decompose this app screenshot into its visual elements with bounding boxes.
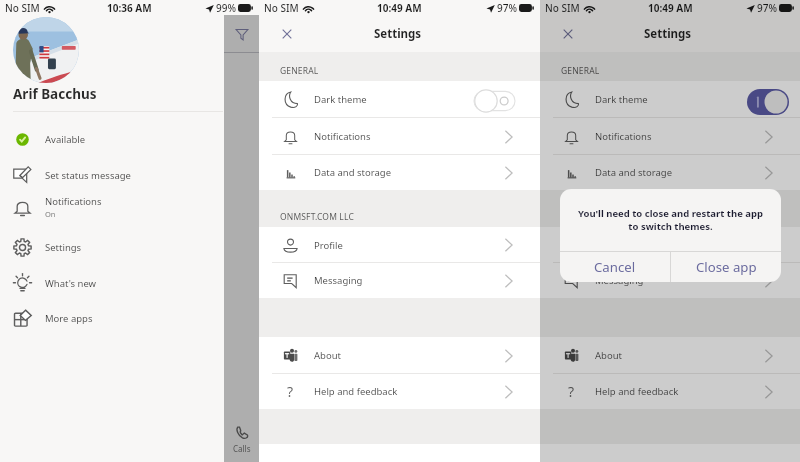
- staticText: No SIM: [264, 1, 299, 15]
- staticText: No SIM: [5, 1, 40, 15]
- button[interactable]: Messaging: [259, 263, 540, 298]
- staticText: Profile: [595, 239, 624, 252]
- button[interactable]: Dark theme: [540, 81, 800, 118]
- staticText: Help and feedback: [595, 385, 679, 398]
- staticText: About: [595, 349, 622, 362]
- button[interactable]: ?: [540, 374, 800, 409]
- staticText: On: [45, 209, 56, 219]
- staticText: Available: [45, 133, 86, 146]
- button[interactable]: Available: [0, 123, 219, 155]
- staticText: ?: [568, 382, 575, 401]
- button[interactable]: Close: [557, 23, 579, 45]
- button[interactable]: Dark theme toggle: [747, 89, 789, 115]
- staticText: You'll need to close and restart the app…: [572, 207, 769, 233]
- button[interactable]: Dark theme toggle: [474, 89, 515, 113]
- button[interactable]: Filter: [224, 15, 259, 52]
- staticText: 99%: [216, 1, 236, 15]
- staticText: Messaging: [595, 274, 644, 287]
- staticText: Arif Bacchus: [13, 85, 97, 103]
- staticText: ?: [287, 382, 294, 401]
- staticText: About: [314, 349, 341, 362]
- staticText: 10:36 AM: [107, 1, 152, 15]
- button[interactable]: Data and storage: [540, 155, 800, 190]
- button[interactable]: Data and storage: [259, 155, 540, 190]
- staticText: ONMSFT.COM LLC: [561, 211, 635, 223]
- staticText: No SIM: [545, 1, 580, 15]
- staticText: Dark theme: [595, 93, 648, 106]
- button[interactable]: Profile photo: [13, 17, 79, 83]
- staticText: Notifications: [595, 130, 652, 143]
- button[interactable]: What's new: [0, 267, 219, 299]
- staticText: Help and feedback: [314, 385, 398, 398]
- button[interactable]: Notifications: [259, 118, 540, 155]
- staticText: Dark theme: [314, 93, 367, 106]
- button[interactable]: About: [540, 337, 800, 374]
- staticText: 10:49 AM: [648, 1, 693, 15]
- button[interactable]: Notifications: [540, 118, 800, 155]
- button[interactable]: About: [259, 337, 540, 374]
- staticText: Cancel: [594, 258, 636, 276]
- button[interactable]: Cancel: [560, 252, 670, 282]
- staticText: 97%: [757, 1, 777, 15]
- button[interactable]: Set status message: [0, 159, 219, 191]
- staticText: Settings: [644, 26, 692, 42]
- staticText: GENERAL: [280, 65, 319, 77]
- button[interactable]: Settings: [0, 231, 219, 263]
- button[interactable]: Profile: [540, 227, 800, 263]
- staticText: Profile: [314, 239, 343, 252]
- button[interactable]: Close app: [671, 252, 781, 282]
- staticText: Settings: [374, 26, 422, 42]
- button[interactable]: Dark theme: [259, 81, 540, 118]
- button[interactable]: Close: [276, 23, 298, 45]
- staticText: Data and storage: [595, 166, 672, 179]
- staticText: Messaging: [314, 274, 363, 287]
- staticText: ONMSFT.COM LLC: [280, 211, 354, 223]
- staticText: What's new: [45, 277, 97, 290]
- staticText: GENERAL: [561, 65, 600, 77]
- staticText: Calls: [233, 443, 251, 454]
- staticText: 97%: [497, 1, 517, 15]
- staticText: Set status message: [45, 169, 131, 182]
- button[interactable]: Profile: [259, 227, 540, 263]
- staticText: Notifications: [45, 195, 102, 208]
- staticText: 10:49 AM: [377, 1, 422, 15]
- staticText: Settings: [45, 241, 82, 254]
- staticText: Data and storage: [314, 166, 391, 179]
- button[interactable]: Notifications: [0, 191, 219, 223]
- button[interactable]: More apps: [0, 302, 219, 334]
- staticText: More apps: [45, 312, 93, 325]
- staticText: Close app: [696, 258, 757, 276]
- staticText: Notifications: [314, 130, 371, 143]
- button[interactable]: Messaging: [540, 263, 800, 298]
- button[interactable]: ?: [259, 374, 540, 409]
